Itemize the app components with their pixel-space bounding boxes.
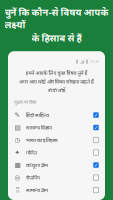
- staticText: 12:30: [90, 59, 99, 64]
- staticText: ▮: [75, 58, 78, 64]
- staticText: हमने आपके लिए कुछ विषय चुने हैं: [25, 69, 87, 76]
- staticText: सामान्य ज्ञान: [26, 186, 48, 194]
- staticText: सामान्य विज्ञान: [26, 124, 52, 131]
- staticText: ▦: [14, 161, 20, 169]
- staticText: भारत का इतिहास: [26, 136, 58, 144]
- staticText: ◎: [14, 174, 20, 181]
- staticText: ✓: [94, 162, 98, 168]
- button[interactable]: ♖: [8, 184, 105, 196]
- staticText: ✓: [94, 112, 98, 118]
- staticText: ▤: [14, 124, 20, 131]
- staticText: रीज़निंग: [26, 174, 40, 181]
- staticText: ▮: [85, 58, 88, 64]
- staticText: चुनें कि कौन-से विषय आपके लक्ष्यों: [4, 6, 108, 31]
- staticText: ✓: [94, 124, 98, 131]
- staticText: तो वो जोड़ें: [47, 86, 65, 93]
- button[interactable]: ✦: [8, 146, 105, 159]
- staticText: के हिसाब से हैं: [31, 32, 81, 44]
- button[interactable]: ◷: [8, 134, 105, 146]
- button[interactable]: ▦: [8, 159, 105, 171]
- button[interactable]: ✎: [8, 109, 105, 121]
- staticText: ✎: [14, 111, 20, 119]
- button[interactable]: ◎: [8, 171, 105, 184]
- staticText: कंप्यूटर ज्ञान: [26, 161, 48, 169]
- staticText: ♖: [14, 186, 20, 194]
- staticText: ◷: [14, 136, 20, 144]
- staticText: सुझाए गए विषय: [14, 99, 36, 105]
- staticText: ✦: [14, 149, 20, 156]
- button[interactable]: ▤: [8, 121, 105, 134]
- staticText: गणित: [26, 149, 37, 156]
- staticText: हिंदी साहित्य: [26, 111, 49, 119]
- staticText: ◢: [80, 58, 84, 64]
- staticText: अगर आप कोई और विषय सीखना चाहते हैं: [19, 78, 94, 85]
